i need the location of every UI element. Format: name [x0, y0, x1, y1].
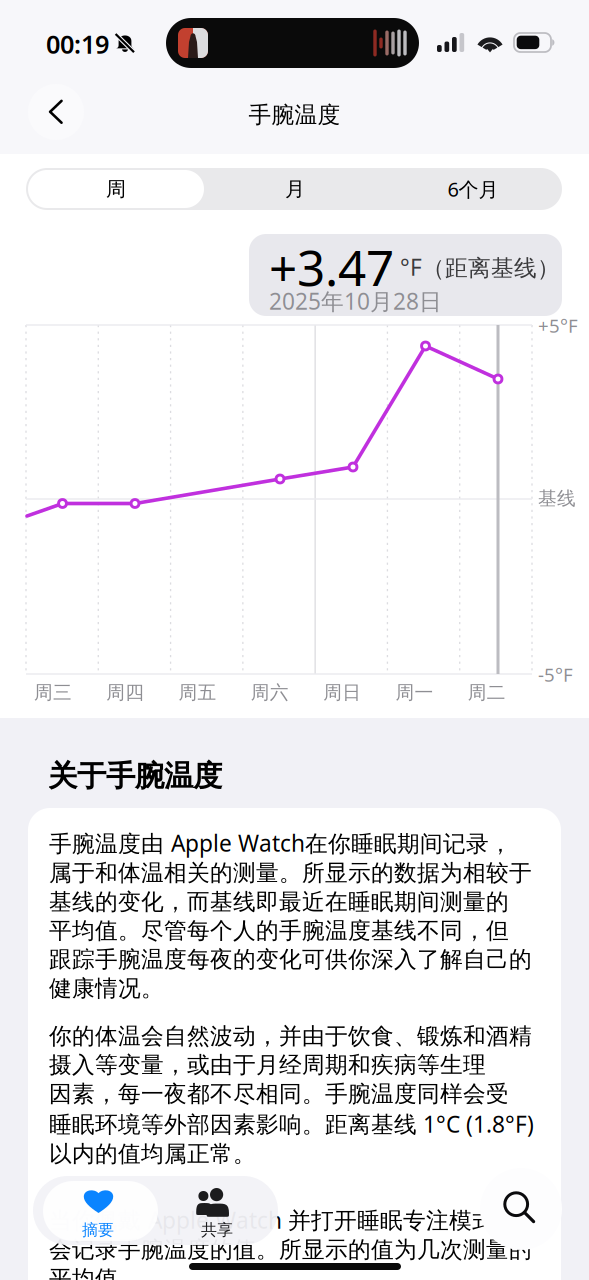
button[interactable]: 共享: [163, 1181, 273, 1241]
staticText: 周三: [34, 681, 72, 704]
staticText: 当你佩戴 Apple Watch 并打开睡眠专注模式时， 会记录手腕温度的值。所…: [49, 1205, 541, 1280]
button[interactable]: 月: [206, 168, 384, 210]
button[interactable]: 返回: [28, 84, 84, 140]
staticText: -5°F: [538, 662, 573, 687]
staticText: 你的体温会自然波动，并由于饮食、锻炼和酒精 摄入等变量，或由于月经周期和疾病等生…: [49, 1022, 534, 1168]
staticText: 手腕温度: [248, 101, 340, 129]
staticText: 手腕温度由 Apple Watch在你睡眠期间记录， 属于和体温相关的测量。所显…: [49, 828, 532, 1002]
button[interactable]: 摘要: [43, 1181, 158, 1241]
staticText: 周四: [106, 681, 144, 704]
staticText: 周一: [395, 681, 433, 704]
staticText: 周: [106, 177, 126, 201]
button[interactable]: 6个月: [384, 168, 562, 210]
staticText: 2025年10月28日: [269, 286, 442, 316]
staticText: °F（距离基线）: [400, 252, 560, 282]
staticText: 00:19: [46, 27, 109, 61]
staticText: 基线: [538, 487, 576, 510]
staticText: +3.47: [269, 234, 394, 299]
staticText: +5°F: [538, 313, 578, 338]
staticText: 月: [285, 177, 305, 201]
staticText: 周六: [251, 681, 289, 704]
staticText: 关于手腕温度: [48, 758, 222, 794]
staticText: 6个月: [447, 176, 498, 202]
button[interactable]: 搜索: [480, 1168, 562, 1250]
button[interactable]: 周: [26, 168, 206, 210]
staticText: 周日: [323, 681, 361, 704]
staticText: 共享: [201, 1220, 233, 1240]
staticText: 周五: [179, 681, 217, 704]
staticText: 周二: [468, 681, 506, 704]
staticText: 摘要: [82, 1220, 114, 1240]
